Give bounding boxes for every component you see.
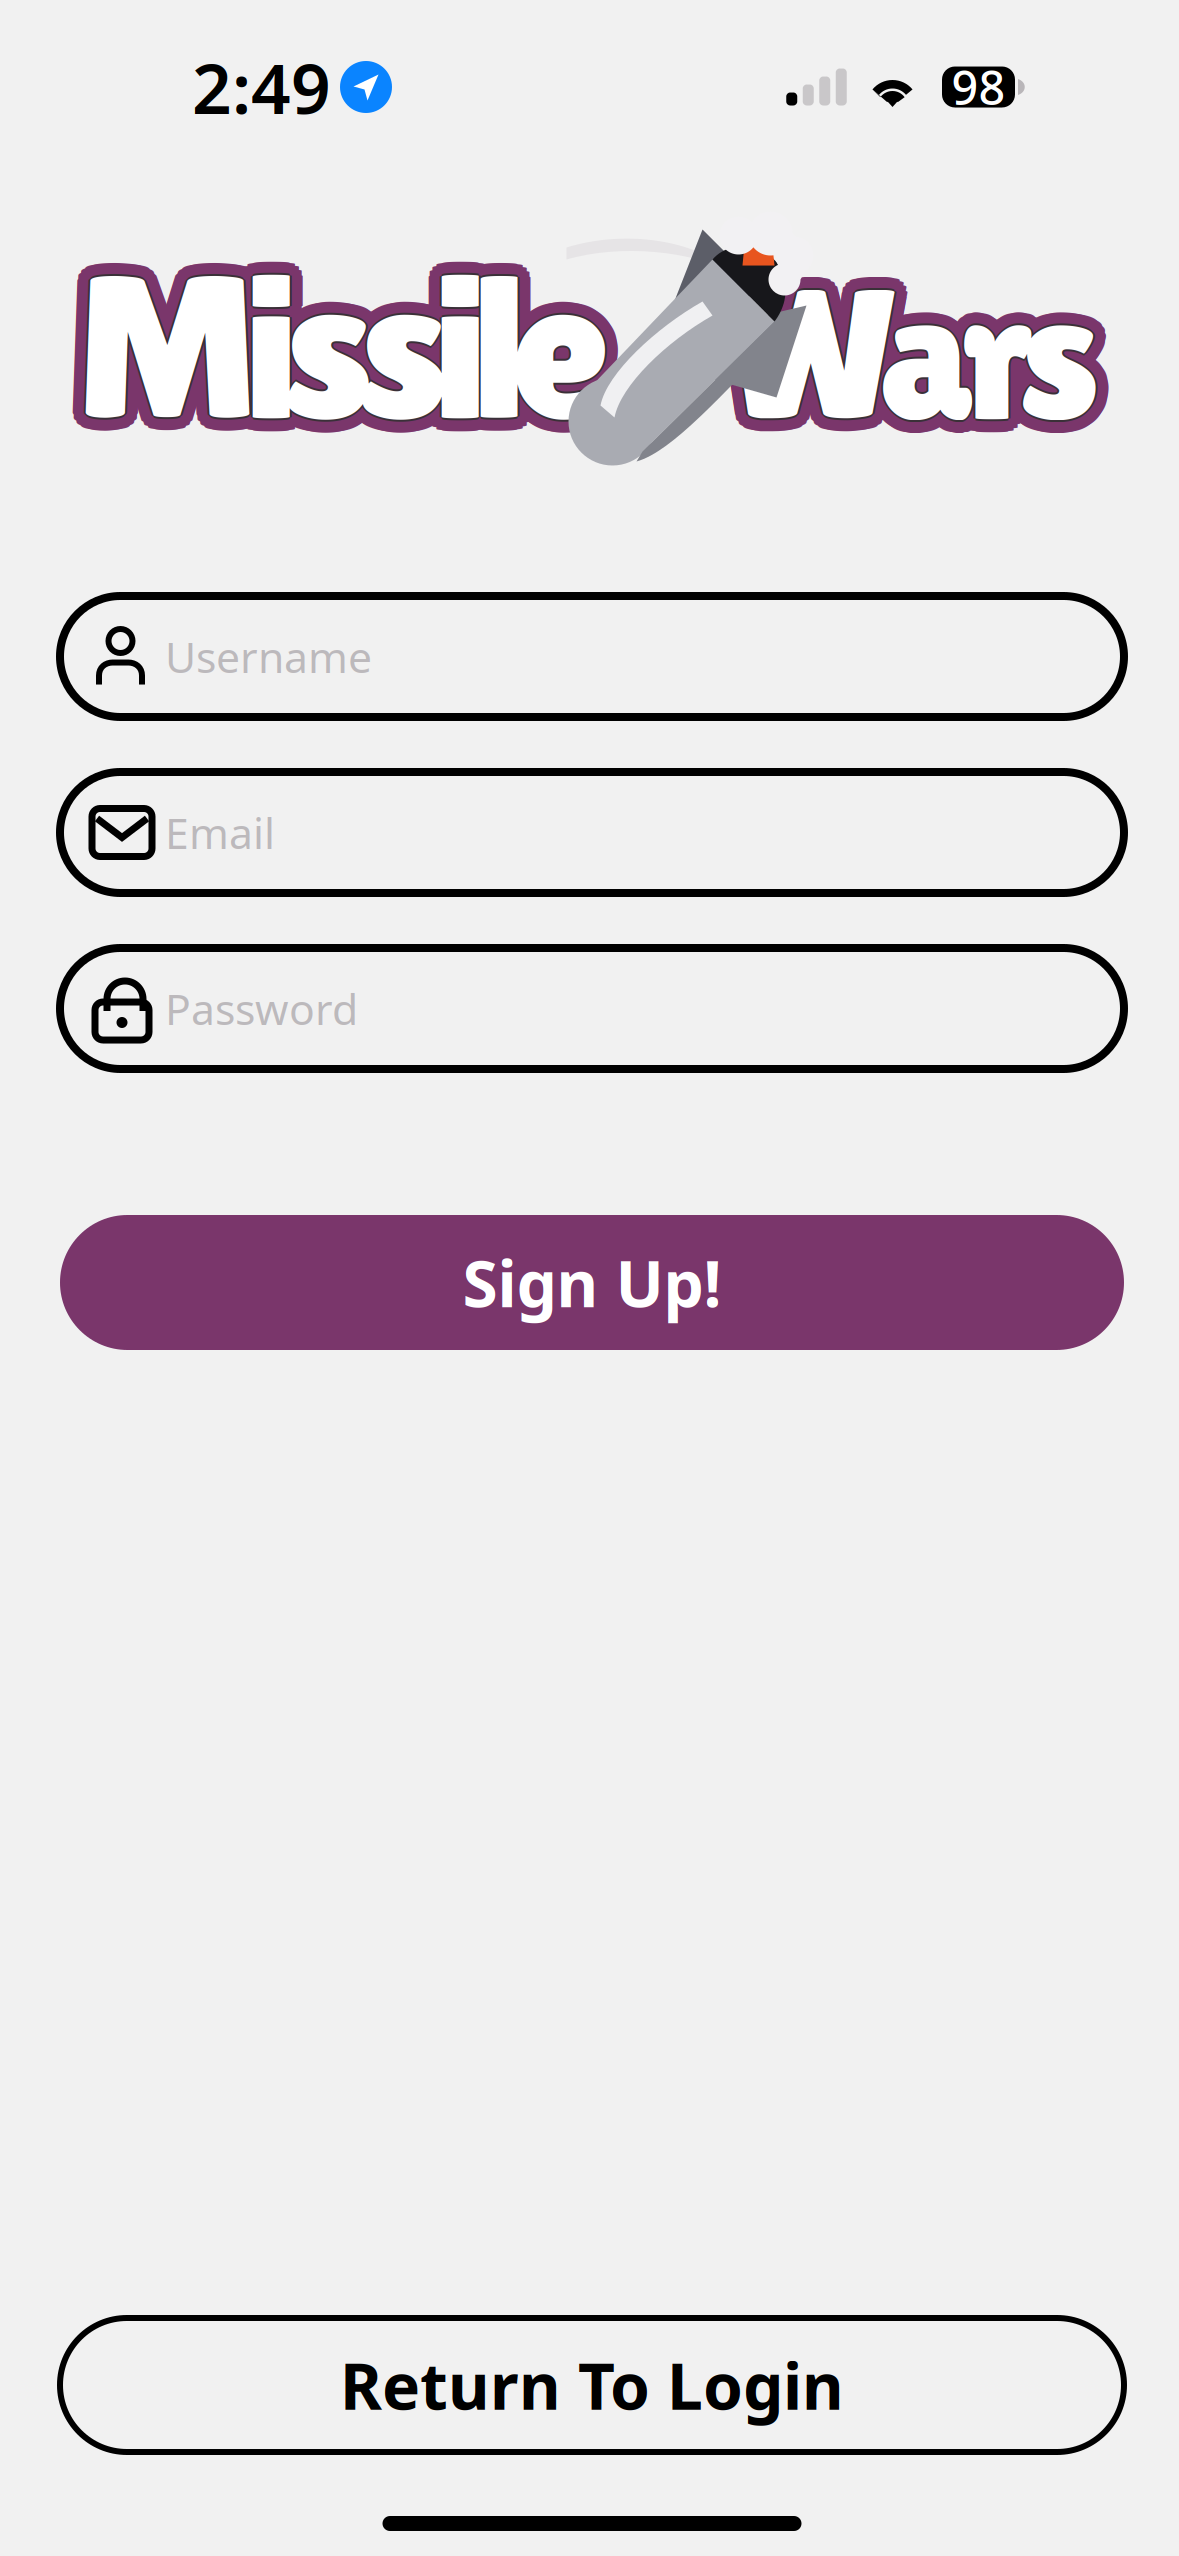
staticText: Missile: [75, 218, 608, 449]
staticText: Missile: [62, 231, 595, 462]
staticText: Wars: [713, 246, 1088, 453]
staticText: Wars: [738, 251, 1113, 458]
staticText: Wars: [727, 251, 1102, 458]
button[interactable]: Sign Up!: [60, 1215, 1124, 1350]
staticText: Wars: [735, 241, 1110, 449]
staticText: Missile: [88, 225, 621, 457]
staticText: Missile: [66, 240, 599, 472]
button[interactable]: Return To Login: [60, 2318, 1124, 2452]
staticText: Wars: [725, 238, 1100, 445]
staticText: Username: [165, 628, 372, 685]
staticText: Missile: [70, 219, 603, 450]
staticText: Missile: [75, 229, 608, 460]
staticText: Sign Up!: [462, 1240, 721, 1325]
staticText: 2:49: [192, 41, 331, 133]
staticText: Missile: [81, 243, 614, 474]
staticText: Wars: [738, 256, 1113, 463]
staticText: Return To Login: [340, 2342, 844, 2427]
staticText: Missile: [70, 243, 603, 474]
staticText: Email: [165, 804, 275, 861]
staticText: Wars: [731, 263, 1106, 470]
staticText: Wars: [712, 251, 1087, 458]
staticText: Wars: [716, 260, 1091, 467]
staticText: Wars: [713, 256, 1088, 463]
staticText: Wars: [735, 260, 1110, 467]
staticText: Wars: [731, 239, 1106, 446]
staticText: Missile: [66, 221, 599, 453]
staticText: Missile: [75, 244, 608, 475]
staticText: Missile: [73, 231, 606, 462]
staticText: Missile: [75, 233, 608, 464]
staticText: Missile: [81, 219, 614, 450]
staticText: Wars: [720, 263, 1095, 470]
staticText: Missile: [85, 240, 618, 472]
staticText: Missile: [85, 221, 618, 453]
staticText: Missile: [63, 225, 596, 457]
staticText: Wars: [725, 251, 1100, 458]
staticText: 98: [951, 56, 1005, 118]
staticText: Missile: [88, 236, 621, 467]
staticText: Wars: [738, 246, 1113, 453]
staticText: Wars: [720, 239, 1095, 446]
staticText: Wars: [723, 251, 1098, 458]
staticText: Missile: [75, 231, 608, 462]
staticText: Wars: [725, 264, 1100, 471]
staticText: Password: [165, 980, 358, 1037]
staticText: Missile: [63, 236, 596, 467]
staticText: Wars: [725, 253, 1100, 460]
staticText: Missile: [88, 231, 621, 462]
staticText: Wars: [725, 249, 1100, 456]
staticText: Wars: [716, 241, 1091, 449]
staticText: Missile: [77, 231, 610, 462]
